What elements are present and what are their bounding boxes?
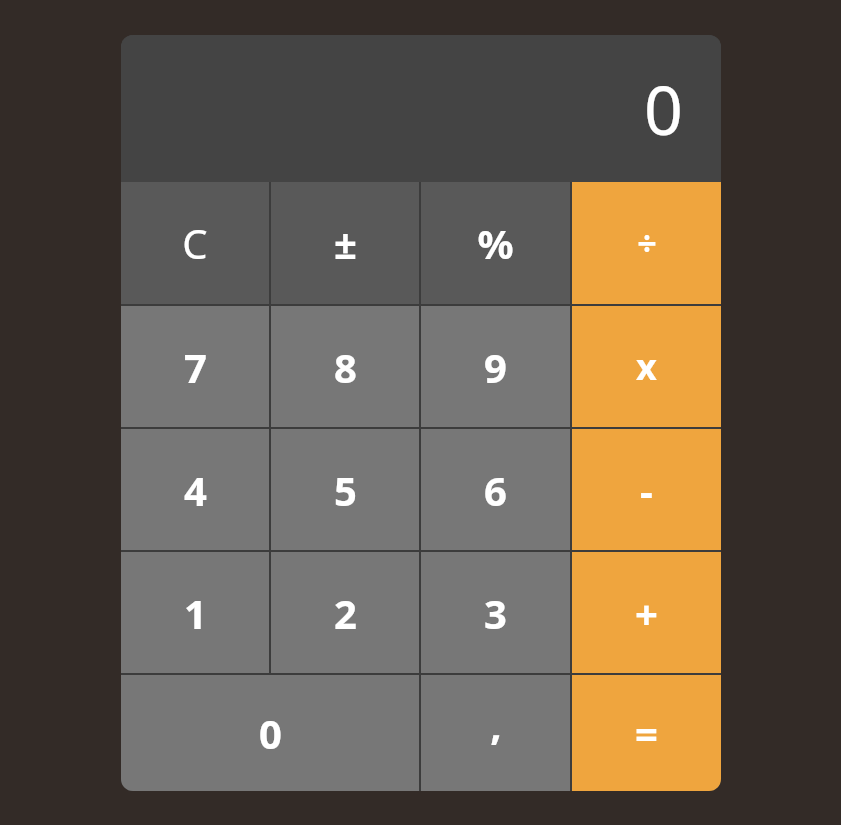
button[interactable]: ,	[421, 675, 570, 791]
staticText: 3	[484, 586, 507, 640]
staticText: 0	[259, 706, 282, 760]
staticText: x	[636, 342, 657, 391]
staticText: ±	[334, 216, 357, 270]
button[interactable]: ÷	[572, 182, 721, 304]
button[interactable]: 7	[121, 306, 269, 427]
staticText: 7	[184, 340, 207, 394]
staticText: +	[635, 586, 658, 640]
button[interactable]: 8	[271, 306, 419, 427]
staticText: 8	[334, 340, 357, 394]
staticText: %	[477, 216, 514, 270]
button[interactable]: %	[421, 182, 570, 304]
staticText: 1	[184, 586, 207, 640]
staticText: 0	[644, 62, 683, 155]
button[interactable]: 4	[121, 429, 269, 550]
staticText: =	[635, 706, 658, 760]
button[interactable]: =	[572, 675, 721, 791]
staticText: ,	[490, 697, 502, 751]
staticText: 5	[334, 463, 357, 517]
staticText: 6	[484, 463, 507, 517]
button[interactable]: C	[121, 182, 269, 304]
button[interactable]: 9	[421, 306, 570, 427]
button[interactable]: 0	[121, 675, 419, 791]
button[interactable]: 1	[121, 552, 269, 673]
staticText: 2	[334, 586, 357, 640]
staticText: C	[182, 216, 208, 270]
staticText: 9	[484, 340, 507, 394]
button[interactable]: x	[572, 306, 721, 427]
button[interactable]: 3	[421, 552, 570, 673]
button[interactable]: 5	[271, 429, 419, 550]
button[interactable]: +	[572, 552, 721, 673]
staticText: -	[640, 463, 653, 517]
button[interactable]: -	[572, 429, 721, 550]
staticText: 4	[184, 463, 207, 517]
button[interactable]: 6	[421, 429, 570, 550]
button[interactable]: 2	[271, 552, 419, 673]
button[interactable]: ±	[271, 182, 419, 304]
staticText: ÷	[637, 220, 657, 266]
